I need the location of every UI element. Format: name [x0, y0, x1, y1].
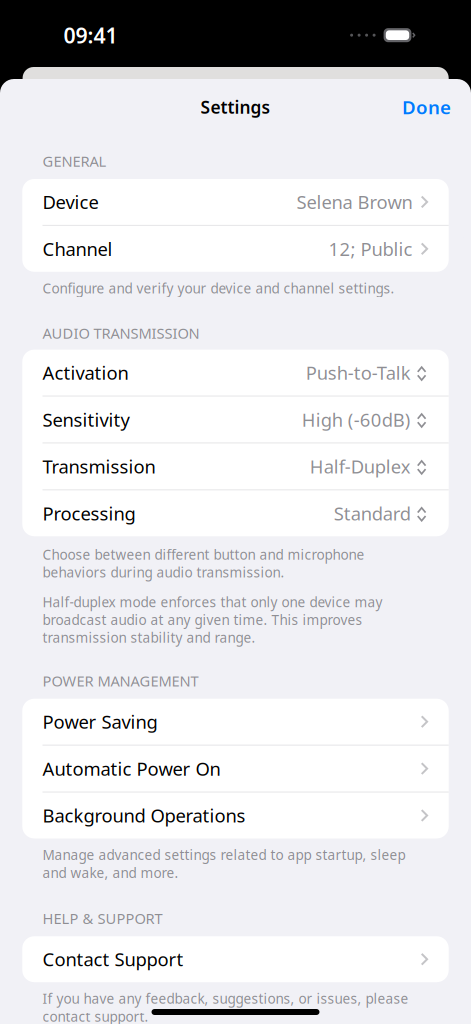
- staticText: Processing: [42, 501, 135, 526]
- staticText: Configure and verify your device and cha…: [42, 279, 394, 297]
- button[interactable]: Automatic Power On: [22, 746, 449, 791]
- staticText: Activation: [42, 360, 128, 385]
- staticText: Contact Support: [42, 947, 183, 972]
- staticText: GENERAL: [42, 151, 106, 171]
- staticText: Half-Duplex: [310, 454, 411, 479]
- staticText: AUDIO TRANSMISSION: [42, 323, 199, 343]
- button[interactable]: Sensitivity: [22, 396, 449, 442]
- staticText: Power Saving: [42, 709, 157, 734]
- button[interactable]: Activation: [22, 350, 449, 395]
- button[interactable]: Transmission: [22, 443, 449, 489]
- staticText: Half-duplex mode enforces that only one …: [42, 593, 382, 646]
- staticText: 12; Public: [328, 236, 412, 261]
- staticText: Device: [42, 189, 98, 214]
- button[interactable]: Power Saving: [22, 699, 449, 745]
- button[interactable]: Device: [22, 179, 449, 225]
- staticText: Done: [402, 95, 451, 119]
- staticText: Choose between different button and micr…: [42, 545, 364, 581]
- staticText: If you have any feedback, suggestions, o…: [42, 990, 408, 1024]
- staticText: Manage advanced settings related to app …: [42, 846, 405, 881]
- staticText: Automatic Power On: [42, 756, 220, 781]
- button[interactable]: Done: [382, 86, 471, 128]
- staticText: Sensitivity: [42, 407, 129, 432]
- staticText: Channel: [42, 236, 112, 261]
- staticText: HELP & SUPPORT: [42, 908, 162, 928]
- staticText: Standard: [334, 501, 411, 526]
- button[interactable]: Contact Support: [22, 936, 449, 982]
- staticText: POWER MANAGEMENT: [42, 671, 198, 691]
- staticText: High (-60dB): [302, 407, 411, 432]
- staticText: 09:41: [63, 21, 117, 49]
- staticText: Settings: [200, 95, 270, 118]
- button[interactable]: Background Operations: [22, 792, 449, 838]
- button[interactable]: Channel: [22, 226, 449, 272]
- button[interactable]: Processing: [22, 490, 449, 536]
- staticText: Push-to-Talk: [306, 360, 411, 385]
- staticText: Selena Brown: [296, 189, 412, 214]
- staticText: Background Operations: [42, 803, 245, 828]
- staticText: Transmission: [42, 454, 155, 479]
